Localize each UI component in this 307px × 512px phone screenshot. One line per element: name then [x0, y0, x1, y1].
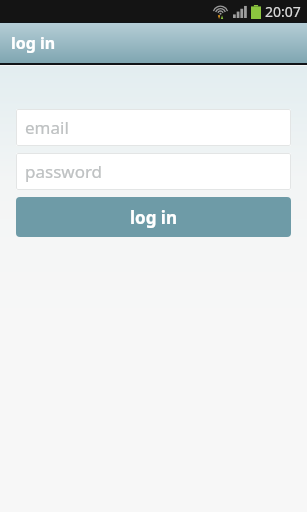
staticText: password: [25, 160, 103, 183]
staticText: 20:07: [265, 2, 301, 21]
button[interactable]: log in: [16, 197, 291, 237]
staticText: email: [25, 116, 69, 139]
button[interactable]: password: [16, 153, 291, 190]
staticText: log in: [11, 32, 56, 54]
staticText: log in: [130, 206, 177, 229]
button[interactable]: email: [16, 109, 291, 146]
